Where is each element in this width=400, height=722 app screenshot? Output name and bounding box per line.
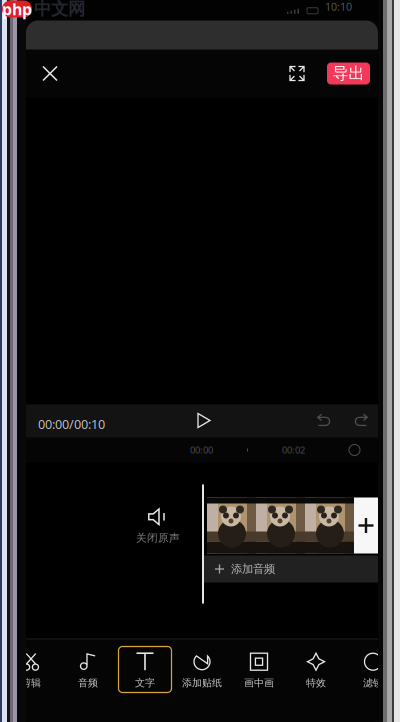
button[interactable]: 重做 [349, 407, 375, 433]
staticText: 特效 [306, 677, 326, 689]
button[interactable]: 特效 [287, 646, 344, 692]
staticText: php [2, 0, 32, 20]
button[interactable]: 关闭 [34, 57, 66, 89]
staticText: 中文网 [34, 0, 85, 20]
button[interactable]: 添加素材 [354, 497, 378, 553]
button[interactable]: 画中画 [230, 646, 287, 692]
button[interactable]: 撤销 [310, 407, 336, 433]
staticText: 剪辑 [21, 677, 41, 689]
button[interactable]: 导出 [327, 62, 370, 84]
staticText: 关闭原声 [136, 531, 180, 545]
button[interactable]: 全屏 [281, 57, 313, 89]
button[interactable]: 添加贴纸 [173, 646, 230, 692]
button[interactable]: 播放 [191, 407, 217, 433]
staticText: 添加贴纸 [182, 677, 222, 689]
staticText: 文字 [135, 677, 155, 689]
staticText: 导出 [332, 64, 364, 83]
staticText: 滤镜 [363, 677, 383, 689]
button[interactable]: 滤镜 [344, 646, 400, 692]
staticText: 音频 [78, 677, 98, 689]
button[interactable]: 文字 [116, 646, 173, 692]
button[interactable]: 剪辑 [2, 646, 59, 692]
staticText: 添加音频 [231, 562, 275, 576]
button[interactable]: 音频 [59, 646, 116, 692]
button[interactable]: 关闭原声 [119, 502, 197, 550]
staticText: 画中画 [244, 677, 274, 689]
staticText: 10:10 [325, 0, 352, 14]
staticText: 00:00/00:10 [38, 415, 105, 433]
staticText: 00:02 [282, 444, 305, 456]
button[interactable]: 添加音频 [204, 555, 378, 582]
button[interactable]: 缩放 [349, 444, 360, 455]
staticText: 00:00 [190, 444, 213, 456]
